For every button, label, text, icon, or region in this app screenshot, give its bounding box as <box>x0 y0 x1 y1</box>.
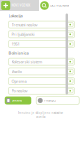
button[interactable]: Po naslov <box>8 87 74 94</box>
staticText: Trenutno je vklopljeno nastavitve <box>17 111 63 115</box>
staticText: Lokacija <box>8 13 22 18</box>
staticText: Kolesarski sistem <box>11 59 42 64</box>
button[interactable]: PREKLICI <box>36 96 79 104</box>
button[interactable]: Kolesarski sistem <box>8 58 74 65</box>
button[interactable]: Vozilo <box>8 68 74 75</box>
button[interactable]: SHRANI <box>5 96 31 104</box>
staticText: Bolnisnica <box>8 50 28 55</box>
button[interactable]: NOVI VOZNIK <box>0 0 39 11</box>
staticText: 1951 <box>11 41 19 47</box>
staticText: Vozilo <box>11 69 21 74</box>
button[interactable]: ISCI VOZNIKA <box>39 0 81 11</box>
button[interactable]: 1951 <box>8 40 74 47</box>
button[interactable]: Trenutni naslov <box>8 21 74 28</box>
staticText: PREKLICI <box>44 99 56 102</box>
button[interactable]: Oprema <box>8 78 74 85</box>
staticText: SHRANI <box>12 99 22 102</box>
staticText: Po naslov <box>11 88 27 93</box>
staticText: Pri ljubljanski <box>11 32 34 37</box>
staticText: voznika <box>36 115 45 119</box>
staticText: Trenutni naslov <box>11 22 37 27</box>
staticText: Oprema <box>11 78 26 84</box>
staticText: NOVI VOZNIK <box>12 4 31 7</box>
button[interactable]: Pri ljubljanski <box>8 31 74 38</box>
staticText: ISCI VOZNIKA <box>50 4 69 7</box>
